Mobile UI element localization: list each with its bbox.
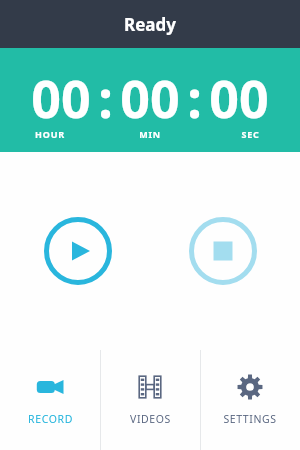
- button[interactable]: SETTINGS: [200, 348, 300, 450]
- staticText: RECORD: [28, 412, 73, 426]
- staticText: :: [98, 62, 113, 133]
- button[interactable]: VIDEOS: [100, 348, 200, 450]
- staticText: :: [187, 62, 202, 133]
- button[interactable]: Stop recording: [189, 217, 257, 285]
- staticText: 00: [209, 62, 269, 133]
- staticText: HOUR: [35, 128, 65, 140]
- staticText: 00: [120, 62, 180, 133]
- staticText: SEC: [241, 128, 260, 140]
- staticText: VIDEOS: [130, 412, 171, 426]
- staticText: MIN: [139, 128, 161, 140]
- staticText: Ready: [124, 13, 176, 36]
- button[interactable]: Start recording: [44, 217, 112, 285]
- staticText: SETTINGS: [223, 412, 277, 426]
- staticText: 00: [31, 62, 91, 133]
- button[interactable]: RECORD: [0, 348, 100, 450]
